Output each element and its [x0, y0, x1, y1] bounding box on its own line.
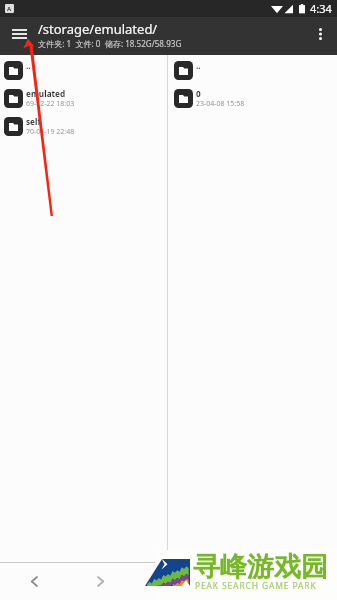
- button[interactable]: ..: [168, 56, 337, 84]
- staticText: 寻峰游戏园: [193, 550, 328, 584]
- staticText: /storage/emulated/: [38, 20, 158, 38]
- button[interactable]: Menu: [0, 17, 38, 55]
- staticText: 70-01-19 22:48: [26, 127, 75, 137]
- button[interactable]: Back: [0, 563, 67, 600]
- staticText: 0: [196, 88, 201, 99]
- button[interactable]: emulated: [0, 84, 167, 112]
- staticText: self: [26, 116, 41, 127]
- staticText: 4:34: [310, 1, 332, 16]
- staticText: PEAK SEARCH GAME PARK: [195, 580, 317, 592]
- button[interactable]: Forward: [67, 563, 134, 600]
- staticText: ..: [26, 60, 31, 71]
- staticText: 文件夹: 1 文件: 0 储存: 18.52G/58.93G: [38, 38, 182, 49]
- button[interactable]: More options: [303, 17, 337, 55]
- staticText: 23-04-08 15:58: [196, 99, 245, 109]
- button[interactable]: self: [0, 112, 167, 140]
- staticText: ..: [196, 60, 201, 71]
- staticText: A: [7, 5, 12, 13]
- staticText: emulated: [26, 88, 66, 99]
- button[interactable]: 0: [168, 84, 337, 112]
- button[interactable]: ..: [0, 56, 167, 84]
- staticText: 69-12-22 18:03: [26, 99, 75, 109]
